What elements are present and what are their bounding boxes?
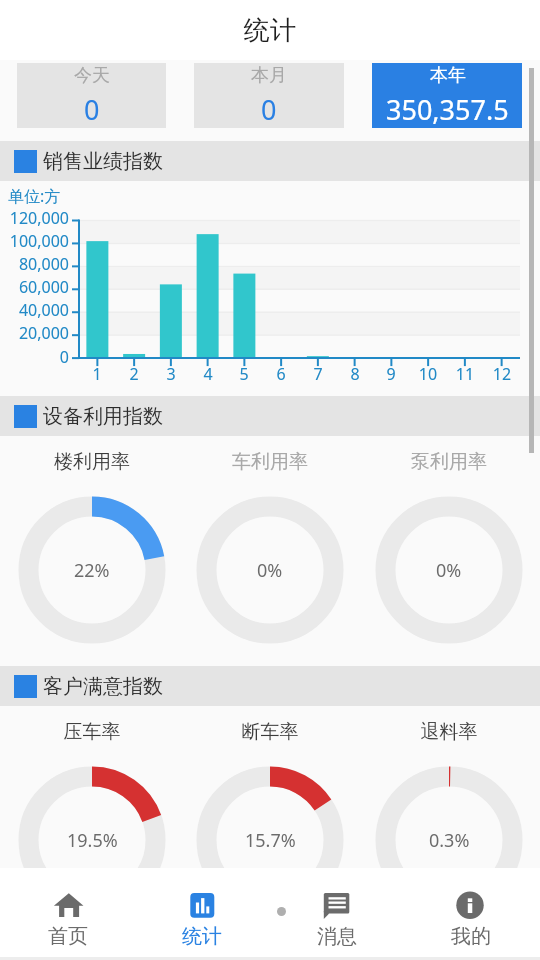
staticText: 8 <box>335 363 375 385</box>
staticText: 单位:方 <box>8 185 61 207</box>
staticText: 断车率 <box>190 720 350 744</box>
button[interactable]: 首页 <box>1 868 135 960</box>
staticText: 0 <box>261 91 277 128</box>
staticText: 20,000 <box>0 322 69 344</box>
staticText: 60,000 <box>0 276 69 298</box>
button[interactable]: 本月 <box>194 63 344 128</box>
staticText: 7 <box>298 363 338 385</box>
staticText: 11 <box>445 363 485 385</box>
staticText: 消息 <box>270 924 404 949</box>
staticText: 19.5% <box>67 828 118 853</box>
button[interactable]: 统计 <box>135 868 269 960</box>
staticText: 4 <box>188 363 228 385</box>
staticText: 车利用率 <box>190 450 350 474</box>
staticText: 12 <box>482 363 522 385</box>
staticText: 统计 <box>135 924 269 949</box>
button[interactable]: 今天 <box>17 63 166 128</box>
staticText: 客户满意指数 <box>43 674 163 699</box>
staticText: 5 <box>224 363 264 385</box>
staticText: 100,000 <box>0 230 69 252</box>
staticText: 15.7% <box>245 828 296 853</box>
staticText: 我的 <box>404 924 538 949</box>
button[interactable]: 本年 <box>372 63 522 128</box>
staticText: 6 <box>261 363 301 385</box>
button[interactable]: 消息 <box>270 868 404 960</box>
staticText: 0% <box>436 558 462 583</box>
staticText: 10 <box>408 363 448 385</box>
staticText: 设备利用指数 <box>43 404 163 429</box>
staticText: 3 <box>151 363 191 385</box>
staticText: 350,357.5 <box>386 91 509 128</box>
staticText: 1 <box>77 363 117 385</box>
staticText: 泵利用率 <box>369 450 529 474</box>
staticText: 本年 <box>430 64 466 87</box>
staticText: 楼利用率 <box>12 450 172 474</box>
staticText: 80,000 <box>0 253 69 275</box>
staticText: 40,000 <box>0 299 69 321</box>
button[interactable]: 销售业绩指数 <box>14 141 540 181</box>
staticText: 0% <box>257 558 283 583</box>
staticText: 销售业绩指数 <box>43 149 163 174</box>
staticText: 0 <box>0 346 69 368</box>
staticText: 今天 <box>74 64 110 87</box>
staticText: 退料率 <box>369 720 529 744</box>
button[interactable]: 客户满意指数 <box>14 666 540 706</box>
staticText: 0 <box>84 91 100 128</box>
staticText: 本月 <box>251 64 287 87</box>
staticText: 2 <box>114 363 154 385</box>
staticText: 22% <box>74 558 110 583</box>
button[interactable]: 设备利用指数 <box>14 396 540 436</box>
staticText: 9 <box>371 363 411 385</box>
button[interactable]: 我的 <box>404 868 538 960</box>
staticText: 压车率 <box>12 720 172 744</box>
staticText: 120,000 <box>0 207 69 229</box>
staticText: 首页 <box>1 924 135 949</box>
staticText: 统计 <box>244 14 296 47</box>
staticText: 0.3% <box>429 828 470 853</box>
